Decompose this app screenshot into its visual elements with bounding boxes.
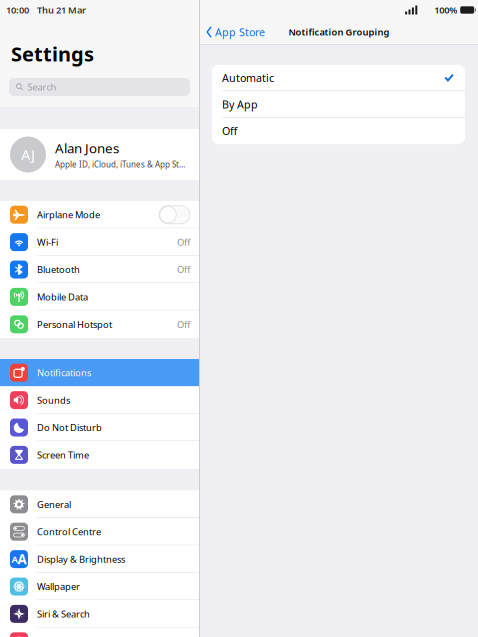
button[interactable]: Notifications — [0, 359, 199, 386]
button[interactable]: Sounds — [0, 386, 199, 414]
staticText: Do Not Disturb — [37, 421, 102, 434]
button[interactable]: Personal Hotspot — [0, 311, 199, 338]
staticText: Mobile Data — [37, 291, 88, 303]
staticText: Automatic — [222, 71, 274, 85]
staticText: A — [17, 550, 26, 568]
staticText: Notifications — [37, 366, 91, 379]
button[interactable]: Wallpaper — [0, 573, 199, 600]
staticText: Search — [27, 81, 56, 93]
staticText: AJ — [21, 145, 35, 164]
button[interactable]: Mobile Data — [0, 283, 199, 311]
staticText: Sounds — [37, 394, 70, 406]
staticText: A — [11, 553, 17, 565]
staticText: Off — [177, 263, 190, 276]
staticText: Personal Hotspot — [37, 318, 112, 330]
button[interactable]: General — [0, 491, 199, 518]
button[interactable]: Touch ID & Passcode — [0, 628, 199, 637]
staticText: Off — [177, 236, 190, 248]
staticText: Control Centre — [37, 525, 101, 538]
staticText: Display & Brightness — [37, 553, 125, 565]
staticText: Wi-Fi — [37, 236, 58, 248]
staticText: Thu 21 Mar — [37, 4, 86, 16]
button[interactable]: Do Not Disturb — [0, 414, 199, 441]
staticText: 10:00 — [6, 4, 29, 16]
staticText: Screen Time — [37, 449, 89, 461]
button[interactable]: Off — [212, 118, 465, 144]
staticText: Alan Jones — [55, 139, 119, 157]
button[interactable]: Airplane Mode — [0, 201, 199, 228]
button[interactable]: Automatic — [212, 65, 465, 91]
button[interactable]: Wi-Fi — [0, 228, 199, 256]
staticText: Airplane Mode — [37, 208, 100, 221]
button[interactable]: App Store — [200, 20, 271, 44]
staticText: General — [37, 498, 71, 510]
button[interactable]: Siri & Search — [0, 600, 199, 628]
button[interactable]: AJ — [0, 129, 199, 180]
staticText: Notification Grouping — [288, 26, 389, 38]
staticText: Off — [222, 124, 237, 138]
button[interactable]: Control Centre — [0, 518, 199, 545]
button[interactable]: By App — [212, 91, 465, 118]
staticText: By App — [222, 97, 258, 112]
button[interactable]: A — [0, 545, 199, 573]
staticText: Off — [177, 318, 190, 330]
staticText: App Store — [215, 25, 265, 39]
button[interactable]: Screen Time — [0, 441, 199, 469]
staticText: Wallpaper — [37, 580, 80, 593]
staticText: Bluetooth — [37, 263, 80, 276]
staticText: Apple ID, iCloud, iTunes & App St… — [55, 159, 185, 170]
button[interactable]: Bluetooth — [0, 256, 199, 283]
staticText: Siri & Search — [37, 608, 90, 620]
staticText: Settings — [11, 40, 94, 67]
staticText: 100% — [434, 4, 457, 16]
